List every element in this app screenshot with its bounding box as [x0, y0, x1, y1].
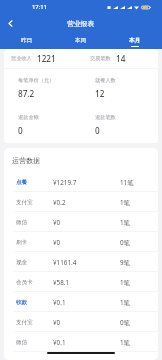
staticText: ¥0.1	[53, 298, 120, 307]
staticText: 14	[116, 53, 126, 64]
staticText: ¥0.2	[53, 198, 120, 207]
staticText: 微信	[16, 339, 53, 346]
button[interactable]: 刷卡	[4, 232, 158, 252]
staticText: 退款笔数	[95, 114, 116, 121]
staticText: 0笔	[120, 238, 130, 247]
staticText: ¥0	[53, 238, 120, 247]
staticText: 营业报表	[67, 19, 95, 28]
button[interactable]: 微信	[4, 332, 158, 352]
staticText: 0	[95, 125, 100, 136]
staticText: 本月	[129, 37, 141, 44]
button[interactable]: 点餐	[4, 172, 158, 192]
staticText: 本周	[75, 37, 87, 44]
staticText: 0	[18, 125, 23, 136]
staticText: 1221	[37, 53, 56, 64]
staticText: 0笔	[120, 318, 130, 327]
button[interactable]: 收款	[4, 292, 158, 312]
staticText: 退款金额	[18, 114, 39, 121]
staticText: 87.2	[18, 88, 35, 99]
staticText: 支付宝	[16, 319, 53, 326]
staticText: ¥1161.4	[53, 258, 120, 267]
button[interactable]: 本周	[54, 33, 108, 49]
button[interactable]: 支付宝	[4, 192, 158, 212]
button[interactable]: 现金	[4, 252, 158, 272]
staticText: 刷卡	[16, 239, 53, 246]
staticText: ¥0	[53, 218, 120, 227]
staticText: 就餐人数	[95, 77, 116, 84]
staticText: 收款	[16, 299, 53, 306]
button[interactable]: 微信	[4, 212, 158, 232]
staticText: ¥1219.7	[53, 178, 120, 187]
staticText: 营业收入	[11, 55, 32, 62]
button[interactable]: 会员卡	[4, 272, 158, 292]
staticText: 现金	[16, 259, 53, 266]
staticText: 交易笔数	[90, 55, 111, 62]
staticText: 1笔	[120, 218, 130, 227]
staticText: 会员卡	[16, 279, 53, 286]
staticText: ¥0	[53, 318, 120, 327]
staticText: 1笔	[120, 338, 130, 347]
staticText: 9笔	[120, 258, 130, 267]
staticText: 1笔	[120, 298, 130, 307]
staticText: 1笔	[120, 198, 130, 207]
button[interactable]: 昨日	[0, 33, 54, 49]
staticText: ¥58.1	[53, 278, 120, 287]
staticText: 11笔	[120, 178, 134, 187]
staticText: 支付宝	[16, 199, 53, 206]
button[interactable]: Back	[0, 14, 20, 33]
staticText: ¥0.1	[53, 338, 120, 347]
staticText: 12	[95, 88, 105, 99]
staticText: 点餐	[16, 179, 53, 186]
staticText: 每笔单价（元）	[18, 77, 55, 84]
button[interactable]: 本月	[108, 33, 162, 49]
staticText: 17:11	[32, 3, 47, 11]
staticText: 运营数据	[12, 156, 40, 165]
staticText: 1笔	[120, 278, 130, 287]
staticText: 昨日	[21, 37, 33, 44]
button[interactable]: 支付宝	[4, 312, 158, 332]
staticText: 微信	[16, 219, 53, 226]
